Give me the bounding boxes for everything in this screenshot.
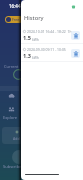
staticText: 1.5 <box>23 34 31 42</box>
staticText: Add <box>13 136 20 141</box>
staticText: 1.3 <box>23 52 31 60</box>
staticText: 16:44 <box>9 3 21 9</box>
button[interactable]: Free <box>5 16 23 23</box>
button[interactable]: Delete record <box>71 31 80 40</box>
button[interactable]: 2024-10-01 16:44 - 18:22 1h 38m <box>21 26 83 44</box>
button[interactable]: Community <box>7 105 15 113</box>
staticText: History <box>24 14 44 22</box>
button[interactable]: 2024-09-30 09:11 - 10:05 <box>21 44 83 62</box>
button[interactable]: Delete record <box>71 49 80 58</box>
staticText: Explore <box>3 115 18 120</box>
button[interactable]: Cloud storage <box>7 91 15 99</box>
staticText: 2024-10-01 16:44 - 18:22 1h 38m <box>27 29 73 34</box>
button[interactable]: Add <box>2 127 24 144</box>
staticText: kWh <box>32 37 39 41</box>
staticText: Free <box>12 17 20 22</box>
staticText: Current <box>4 64 19 69</box>
staticText: kWh <box>32 55 39 59</box>
staticText: 2024-09-30 09:11 - 10:05 <box>27 47 66 52</box>
staticText: Subscribe <box>3 164 22 169</box>
